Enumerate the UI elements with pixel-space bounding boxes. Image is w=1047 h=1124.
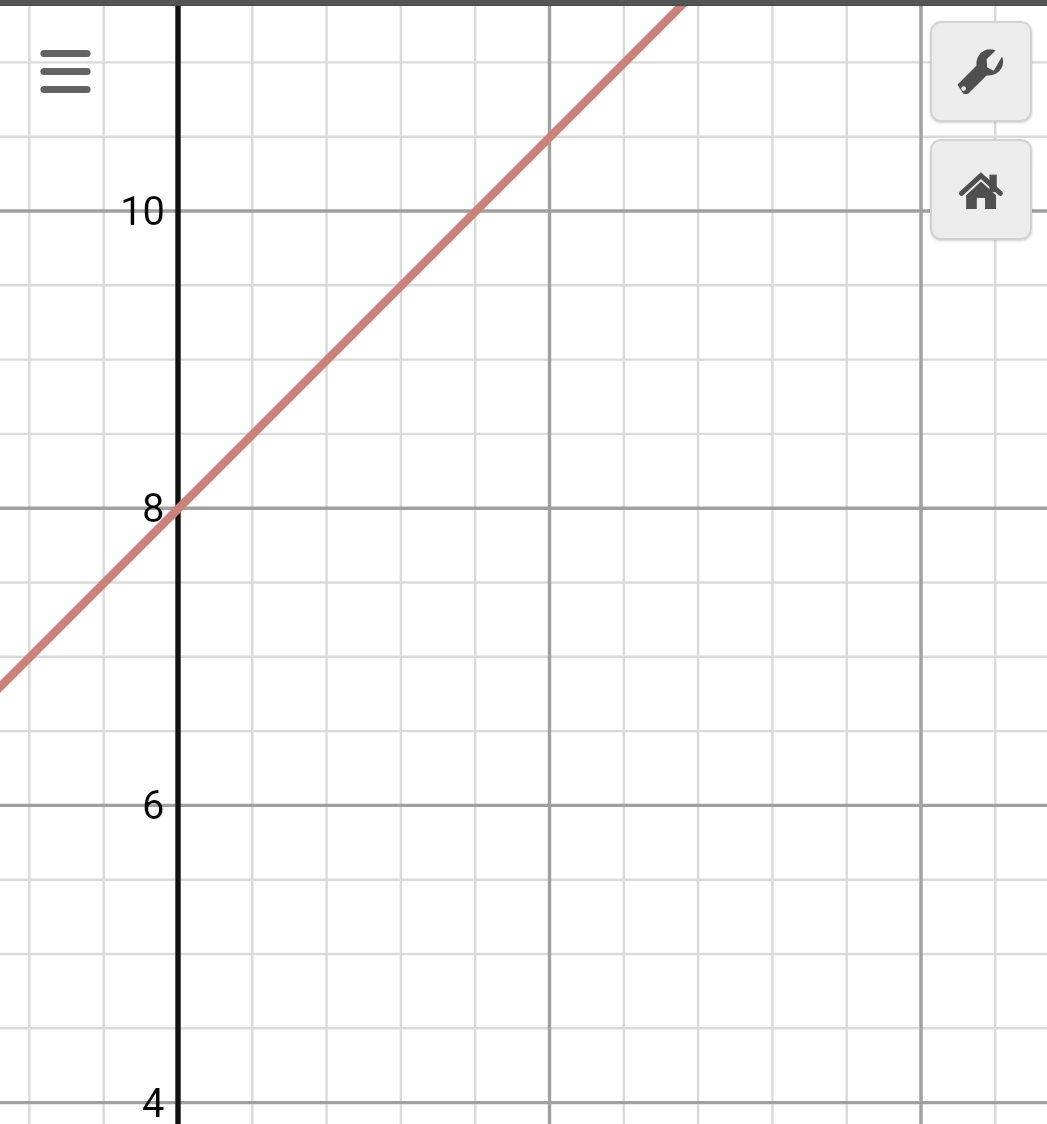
button[interactable]: Home	[930, 139, 1032, 240]
button[interactable]: Settings	[930, 21, 1032, 122]
button[interactable]: Open menu	[20, 29, 110, 113]
staticText: 8	[142, 485, 165, 532]
staticText: 6	[142, 782, 165, 829]
staticText: 4	[142, 1080, 165, 1124]
staticText: 10	[120, 188, 165, 235]
